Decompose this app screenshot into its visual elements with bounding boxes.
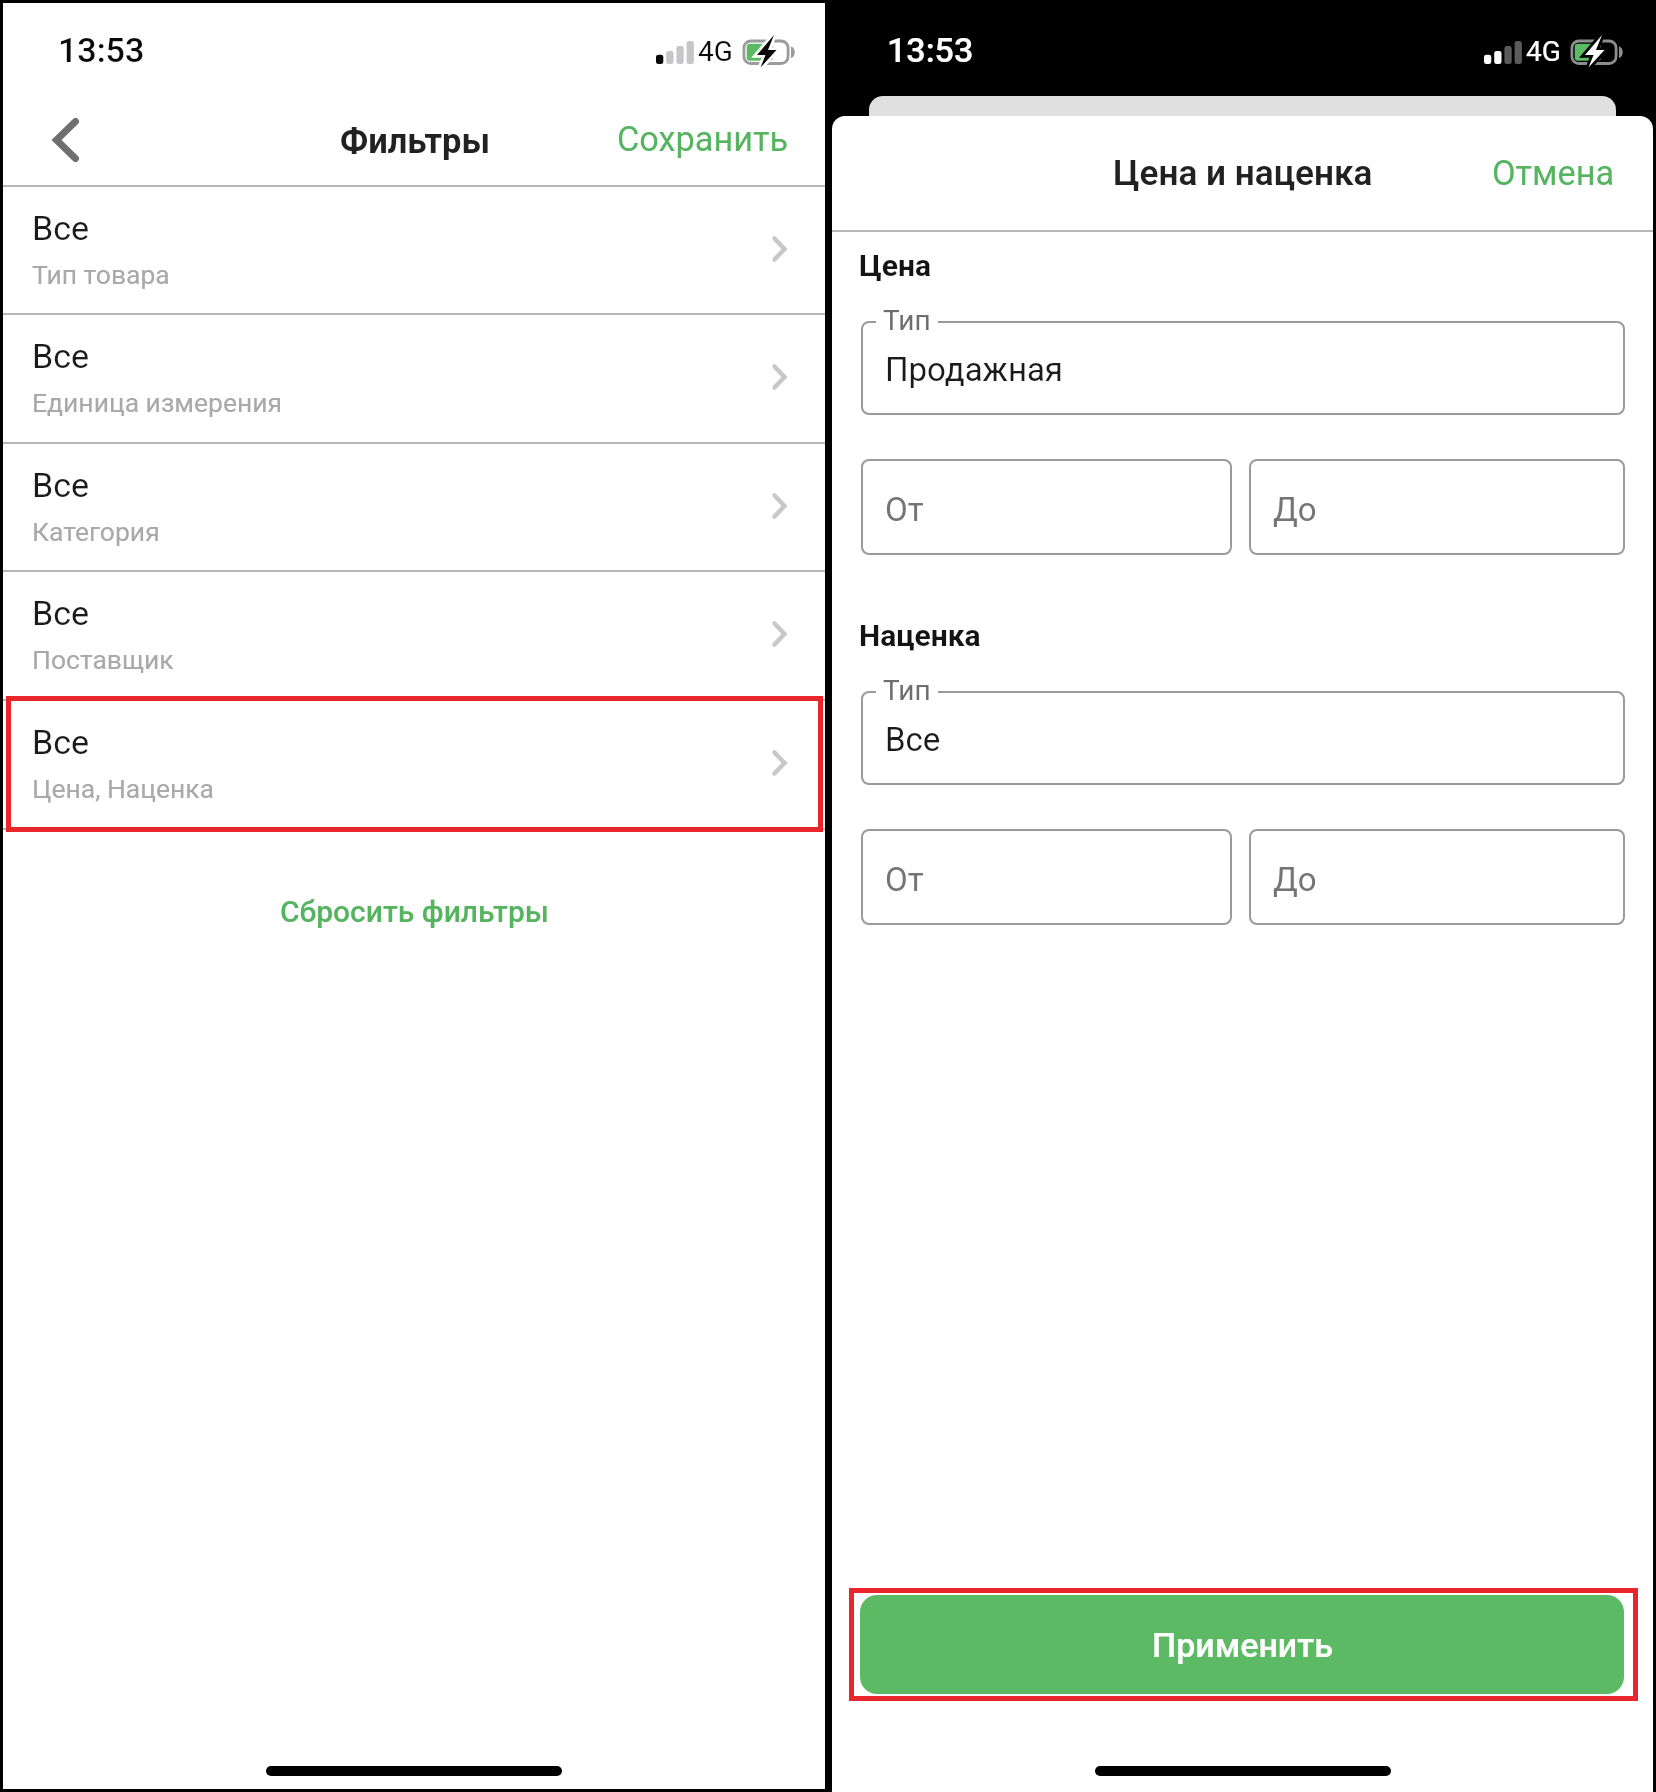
button[interactable]: Сохранить <box>597 105 809 173</box>
button[interactable]: От <box>861 829 1232 925</box>
button[interactable]: Все <box>3 572 825 699</box>
button[interactable]: Back <box>25 100 109 178</box>
staticText: Тип <box>883 304 931 337</box>
button[interactable] <box>861 321 1625 415</box>
staticText: Все <box>32 722 90 762</box>
button[interactable]: Все <box>3 701 825 828</box>
staticText: До <box>1273 860 1317 899</box>
staticText: Отмена <box>1492 153 1615 193</box>
staticText: Поставщик <box>32 644 174 675</box>
staticText: До <box>1273 490 1317 529</box>
staticText: От <box>885 860 924 899</box>
staticText: Фильтры <box>340 121 491 161</box>
staticText: 13:53 <box>887 30 974 70</box>
staticText: Цена и наценка <box>1113 152 1373 193</box>
staticText: 4G <box>1526 35 1561 68</box>
staticText: Цена, Наценка <box>32 773 215 804</box>
button[interactable]: До <box>1249 829 1625 925</box>
staticText: Применить <box>1152 1625 1333 1665</box>
staticText: Наценка <box>859 618 981 653</box>
staticText: От <box>885 490 924 529</box>
staticText: Продажная <box>885 350 1063 389</box>
button[interactable]: Отмена <box>1472 139 1635 207</box>
button[interactable]: Все <box>3 187 825 314</box>
button[interactable]: Все <box>3 444 825 571</box>
button[interactable]: Применить <box>860 1595 1624 1694</box>
staticText: Все <box>32 465 90 505</box>
staticText: Тип товара <box>32 259 170 290</box>
button[interactable] <box>861 691 1625 785</box>
staticText: Все <box>32 208 90 248</box>
staticText: Сбросить фильтры <box>280 894 549 929</box>
button[interactable]: От <box>861 459 1232 555</box>
button[interactable]: Все <box>3 315 825 442</box>
staticText: Цена <box>859 248 931 283</box>
staticText: Все <box>885 720 941 759</box>
staticText: Все <box>32 336 90 376</box>
staticText: Тип <box>883 674 931 707</box>
staticText: 13:53 <box>58 30 145 70</box>
staticText: Сохранить <box>617 119 789 159</box>
button[interactable]: До <box>1249 459 1625 555</box>
staticText: 4G <box>698 35 733 68</box>
staticText: Категория <box>32 516 160 547</box>
staticText: Все <box>32 593 90 633</box>
button[interactable]: Сбросить фильтры <box>3 831 825 959</box>
staticText: Единица измерения <box>32 387 283 418</box>
